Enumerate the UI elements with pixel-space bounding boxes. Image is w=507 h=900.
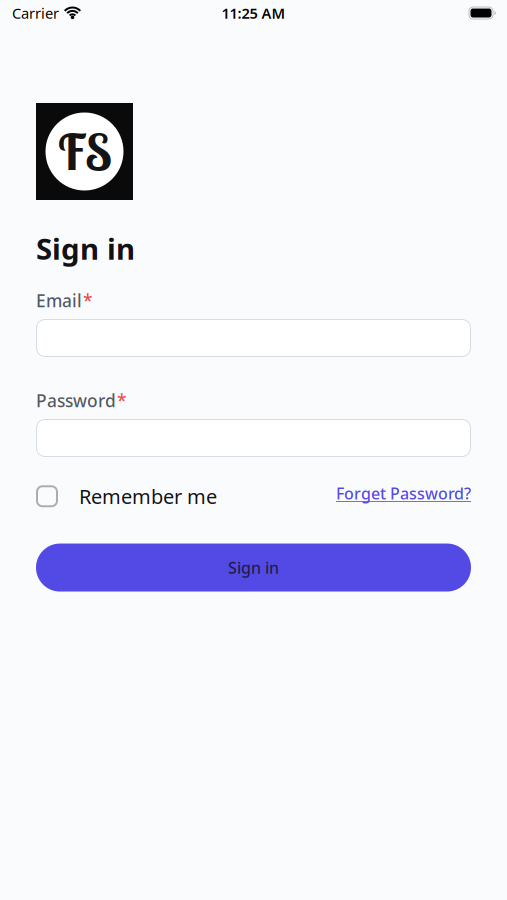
staticText: Email <box>36 289 82 312</box>
staticText: * <box>83 289 92 312</box>
staticText: 11:25 AM <box>221 3 285 23</box>
staticText: Remember me <box>79 483 217 510</box>
staticText: FS <box>58 121 111 182</box>
staticText: Forget Password? <box>336 483 471 504</box>
staticText: * <box>117 389 126 412</box>
button[interactable]: Sign in <box>36 543 471 591</box>
button[interactable]: Remember me <box>36 483 217 510</box>
staticText: Carrier <box>12 3 59 23</box>
staticText: Sign in <box>228 557 279 578</box>
staticText: Password <box>36 389 116 412</box>
staticText: Sign in <box>36 229 135 268</box>
button[interactable]: Forget Password? <box>336 483 471 504</box>
